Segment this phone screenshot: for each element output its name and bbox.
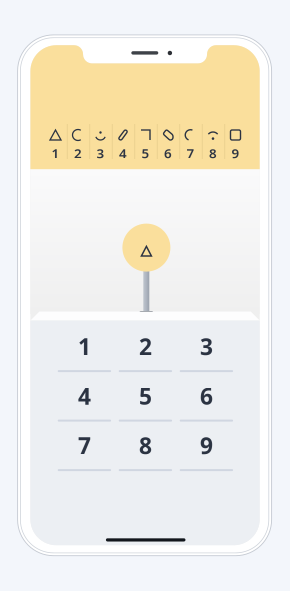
staticText: 9 — [200, 430, 213, 460]
button[interactable]: 5 — [115, 372, 176, 422]
staticText: 2 — [139, 331, 152, 361]
button[interactable]: 9 — [176, 422, 237, 471]
button[interactable]: 8 — [115, 422, 176, 471]
staticText: 3 — [200, 331, 213, 361]
button[interactable]: Shape 1 — [44, 124, 67, 159]
staticText: 6 — [164, 144, 172, 162]
button[interactable]: Shape 4 — [112, 124, 134, 159]
staticText: 8 — [209, 144, 217, 162]
staticText: 8 — [139, 430, 152, 460]
button[interactable]: Shape 7 — [179, 124, 202, 159]
staticText: 3 — [96, 144, 104, 162]
button[interactable]: Shape 3 — [89, 124, 112, 159]
button[interactable]: Shape 9 — [224, 124, 247, 159]
button[interactable]: Shape 8 — [202, 124, 224, 159]
staticText: 4 — [119, 144, 127, 162]
button[interactable]: Shape 2 — [67, 124, 89, 159]
button[interactable]: Shape 5 — [134, 124, 157, 159]
staticText: 6 — [200, 381, 213, 411]
button[interactable]: 2 — [115, 323, 176, 372]
button[interactable]: 3 — [176, 323, 237, 372]
staticText: 9 — [231, 144, 239, 162]
button[interactable]: 7 — [54, 422, 115, 471]
staticText: 7 — [78, 430, 91, 460]
staticText: 2 — [74, 144, 82, 162]
staticText: 1 — [51, 144, 59, 162]
button[interactable]: Shape 6 — [157, 124, 179, 159]
staticText: 5 — [139, 381, 152, 411]
button[interactable]: 6 — [176, 372, 237, 422]
staticText: 4 — [78, 381, 91, 411]
button[interactable]: 1 — [54, 323, 115, 372]
staticText: 1 — [78, 331, 91, 361]
button[interactable]: 4 — [54, 372, 115, 422]
staticText: 7 — [186, 144, 194, 162]
staticText: 5 — [141, 144, 149, 162]
